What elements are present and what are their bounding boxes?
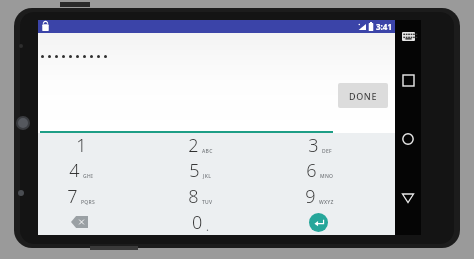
button[interactable]: Recent apps <box>397 69 419 91</box>
button[interactable]: Home <box>397 128 419 150</box>
button[interactable]: 9 <box>276 183 395 209</box>
button[interactable]: 7 <box>38 183 157 209</box>
button[interactable]: 8 <box>157 183 276 209</box>
staticText: ABC <box>202 148 213 155</box>
staticText: . <box>206 219 209 234</box>
button[interactable]: 0 <box>157 209 276 235</box>
staticText: DEF <box>322 148 332 155</box>
button[interactable]: 5 <box>157 158 276 183</box>
button[interactable]: 3 <box>276 133 395 158</box>
button[interactable]: Delete <box>38 209 157 235</box>
staticText: JKL <box>203 173 212 180</box>
staticText: 1 <box>76 133 87 158</box>
staticText: MNO <box>320 173 334 180</box>
staticText: GHI <box>83 173 94 180</box>
staticText: 8 <box>188 184 199 209</box>
staticText: 5 <box>189 158 200 183</box>
staticText: PQRS <box>81 199 96 206</box>
staticText: 2 <box>188 133 199 158</box>
staticText: TUV <box>202 199 213 206</box>
button[interactable]: Back <box>397 187 419 209</box>
staticText: 6 <box>306 158 317 183</box>
staticText: 7 <box>67 184 78 209</box>
staticText: 9 <box>305 184 316 209</box>
button[interactable]: 2 <box>157 133 276 158</box>
button[interactable]: DONE <box>338 83 388 108</box>
staticText: DONE <box>349 90 378 102</box>
button[interactable]: Enter <box>276 209 395 235</box>
button[interactable]: 1 <box>38 133 157 158</box>
staticText: WXYZ <box>319 199 334 206</box>
button[interactable]: 4 <box>38 158 157 183</box>
button[interactable]: Hide keyboard <box>398 26 418 46</box>
staticText: 3:41 <box>376 21 392 32</box>
staticText: 4 <box>69 158 80 183</box>
button[interactable]: 6 <box>276 158 395 183</box>
staticText: 3 <box>308 133 319 158</box>
staticText: 0 <box>192 210 203 235</box>
